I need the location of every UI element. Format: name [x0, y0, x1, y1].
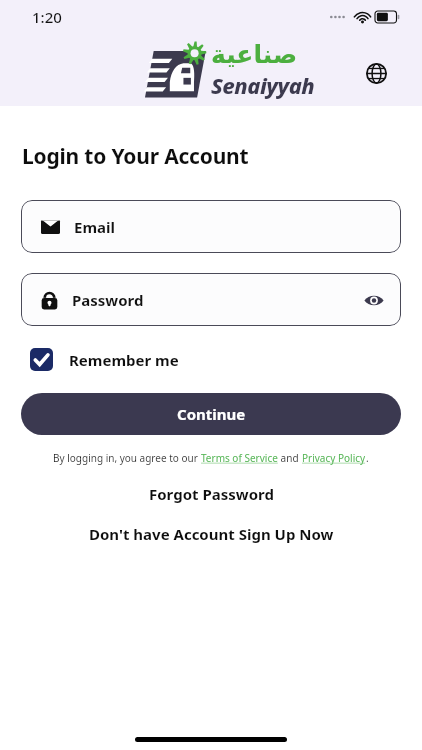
button[interactable]: Change language [362, 59, 390, 87]
button[interactable]: Remember me [30, 348, 179, 371]
button[interactable]: Don't have Account Sign Up Now [0, 524, 422, 544]
staticText: Forgot Password [149, 484, 274, 504]
staticText: Don't have Account Sign Up Now [89, 524, 334, 544]
button[interactable]: Continue [21, 393, 401, 435]
staticText: By logging in, you agree to our [53, 451, 201, 465]
button[interactable]: Email [21, 200, 401, 253]
button[interactable]: Forgot Password [0, 484, 422, 504]
staticText: Remember me [69, 350, 179, 370]
staticText: Senaiyyah [211, 70, 315, 100]
staticText: صناعية [211, 40, 298, 69]
button[interactable]: Privacy Policy [302, 451, 366, 465]
button[interactable]: Password [21, 273, 401, 326]
staticText: Email [74, 217, 115, 237]
staticText: Login to Your Account [22, 142, 249, 171]
staticText: 1:20 [32, 7, 62, 27]
staticText: Password [72, 290, 144, 310]
staticText: and [278, 451, 302, 465]
button[interactable]: Show password [359, 285, 389, 315]
staticText: Continue [177, 404, 246, 424]
staticText: . [366, 451, 369, 465]
button[interactable]: Terms of Service [201, 451, 278, 465]
